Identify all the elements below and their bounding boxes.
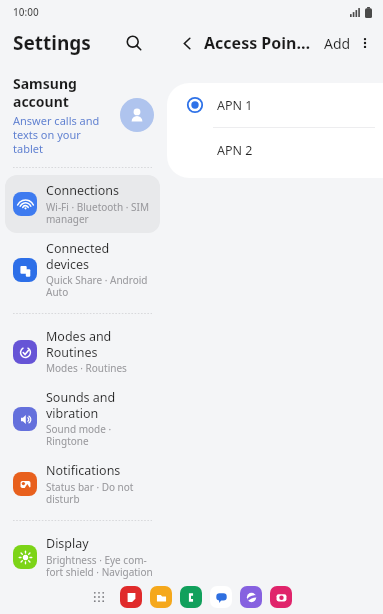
button[interactable]: Search xyxy=(120,29,148,57)
staticText: APN 1 xyxy=(217,97,253,114)
button[interactable]: Modes and Routines xyxy=(5,321,160,382)
button[interactable]: My Files xyxy=(150,586,172,608)
button[interactable]: Messages xyxy=(210,586,232,608)
button[interactable]: Phone xyxy=(180,586,202,608)
button[interactable]: Sounds and vibration xyxy=(5,382,160,455)
staticText: Display xyxy=(46,535,89,552)
staticText: Brightness · Eye com- fort shield · Navi… xyxy=(46,553,153,579)
staticText: Sounds and vibration xyxy=(46,389,116,421)
staticText: Quick Share · Android Auto xyxy=(46,273,148,299)
staticText: APN 2 xyxy=(217,142,253,159)
staticText: Answer calls and texts on your tablet xyxy=(13,113,100,156)
button[interactable]: Add xyxy=(322,30,353,57)
button[interactable]: Connections xyxy=(5,175,160,233)
button[interactable]: Back xyxy=(174,30,200,56)
staticText: Modes · Routines xyxy=(46,361,127,375)
button[interactable]: Camera xyxy=(270,586,292,608)
button[interactable]: Settings xyxy=(13,30,91,56)
staticText: Sound mode · Ringtone xyxy=(46,422,154,448)
staticText: Access Point Na... xyxy=(204,32,317,54)
button[interactable]: Connected devices xyxy=(5,233,160,306)
button[interactable]: Samsung account xyxy=(5,70,160,160)
staticText: Connected devices xyxy=(46,240,154,272)
button[interactable]: APN 2 xyxy=(167,128,383,172)
button[interactable]: Samsung Notes xyxy=(120,586,142,608)
button[interactable]: Notifications xyxy=(5,455,160,513)
button[interactable]: Display xyxy=(5,528,160,586)
staticText: Add xyxy=(324,34,351,53)
staticText: Status bar · Do not disturb xyxy=(46,480,134,506)
staticText: 10:00 xyxy=(13,5,39,19)
button[interactable]: Internet xyxy=(240,586,262,608)
button[interactable]: All apps xyxy=(88,586,110,608)
staticText: Wi-Fi · Bluetooth · SIM manager xyxy=(46,200,149,226)
staticText: Connections xyxy=(46,182,119,199)
button[interactable]: More options xyxy=(353,31,377,55)
staticText: Samsung account xyxy=(13,74,77,111)
button[interactable]: APN 1 xyxy=(167,83,383,127)
staticText: Notifications xyxy=(46,462,121,479)
staticText: Modes and Routines xyxy=(46,328,112,360)
